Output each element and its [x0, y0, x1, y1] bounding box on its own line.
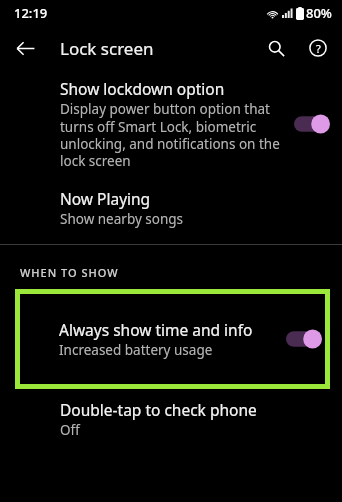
staticText: Now Playing [60, 188, 151, 209]
staticText: WHEN TO SHOW [20, 265, 119, 280]
button[interactable]: Toggle [294, 114, 330, 134]
button[interactable]: Back [8, 31, 42, 65]
button[interactable]: Search [258, 30, 294, 66]
staticText: 80% [306, 4, 332, 22]
staticText: Show lockdown option [60, 78, 225, 99]
button[interactable]: Double-tap to check phone [0, 399, 342, 439]
staticText: 12:19 [14, 4, 48, 22]
button[interactable]: Now Playing [0, 188, 342, 228]
staticText: Double-tap to check phone [60, 399, 257, 420]
staticText: Lock screen [60, 37, 154, 60]
button[interactable]: Toggle [286, 329, 322, 349]
staticText: Increased battery usage [59, 341, 213, 359]
staticText: Always show time and info [59, 319, 253, 340]
staticText: ? [316, 41, 321, 56]
staticText: Off [60, 421, 80, 439]
staticText: Show nearby songs [60, 210, 184, 228]
button[interactable]: Always show time and info [15, 319, 330, 359]
button[interactable]: Help [300, 30, 336, 66]
staticText: Display power button option that turns o… [60, 100, 288, 170]
button[interactable]: Show lockdown option [0, 78, 342, 176]
